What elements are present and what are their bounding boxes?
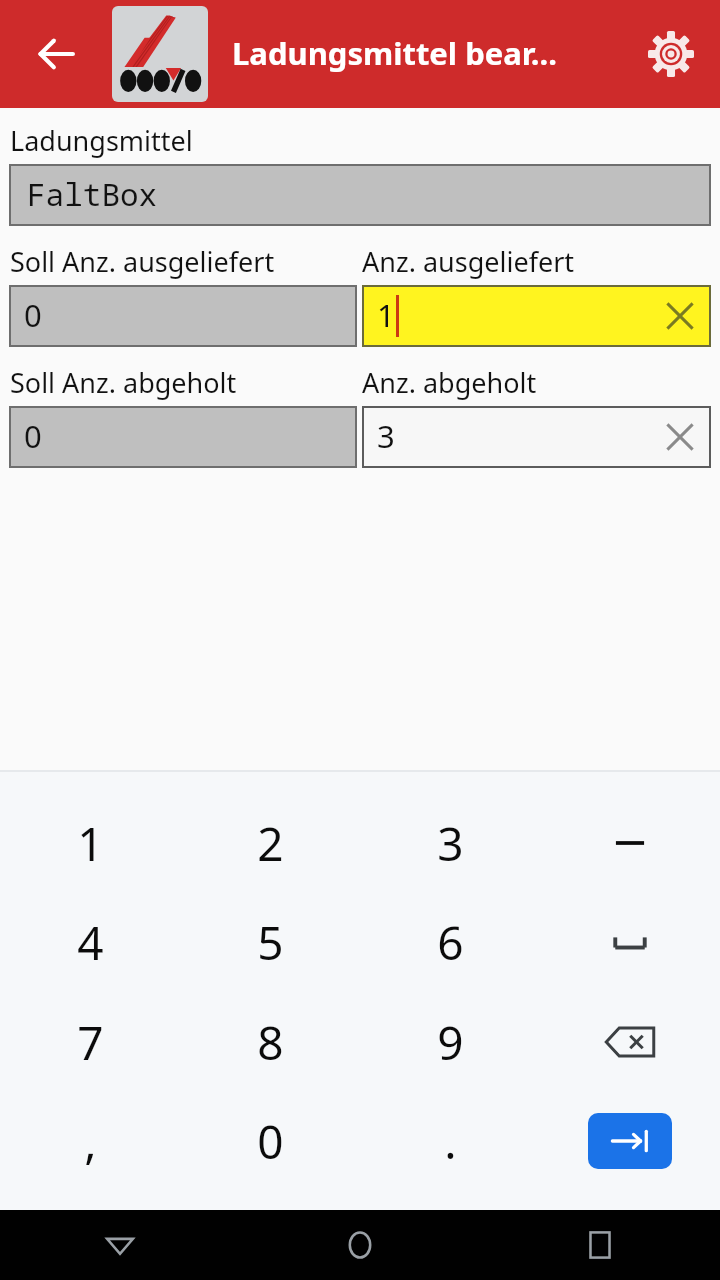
staticText: FaltBox [27,173,158,215]
button[interactable]: 0 [9,285,357,347]
button[interactable]: 6 [360,893,540,991]
staticText: 0 [257,1110,284,1173]
button[interactable]: 7 [0,993,180,1091]
staticText: 7 [77,1011,104,1074]
staticText: 1 [377,294,395,336]
button[interactable]: 9 [360,993,540,1091]
staticText: 0 [24,294,42,336]
button[interactable]: Clear [649,285,711,347]
button[interactable]: , [0,1092,180,1190]
staticText: 9 [437,1011,464,1074]
staticText: Anz. abgeholt [362,364,537,401]
staticText: Ladungsmittel [10,122,193,159]
button[interactable]: Minus [540,794,720,892]
button[interactable]: Space [540,893,720,991]
button[interactable]: 3 [362,406,711,468]
button[interactable]: 4 [0,893,180,991]
button[interactable]: Backspace [540,993,720,1091]
button[interactable]: Hide keyboard [0,1210,240,1280]
staticText: 5 [257,911,284,974]
staticText: 2 [257,812,284,875]
staticText: 8 [257,1011,284,1074]
staticText: . [444,1110,457,1173]
button[interactable]: Next [540,1092,720,1190]
button[interactable]: . [360,1092,540,1190]
staticText: 3 [437,812,464,875]
staticText: Soll Anz. abgeholt [10,364,362,401]
button[interactable]: Clear [649,406,711,468]
button[interactable]: 2 [180,794,360,892]
button[interactable]: 0 [9,406,357,468]
staticText: Soll Anz. ausgeliefert [10,243,362,280]
staticText: , [84,1110,97,1173]
button[interactable]: Recent apps [480,1210,720,1280]
staticText: 3 [377,415,395,457]
staticText: 6 [437,911,464,974]
staticText: 4 [77,911,104,974]
button[interactable]: Back [22,20,90,88]
button[interactable]: FaltBox [9,164,711,226]
button[interactable]: 1 [362,285,711,347]
button[interactable]: 0 [180,1092,360,1190]
staticText: Anz. ausgeliefert [362,243,575,280]
staticText: 0 [24,415,42,457]
button[interactable]: 5 [180,893,360,991]
staticText: 1 [77,812,104,875]
button[interactable]: Settings [636,19,706,89]
button[interactable]: 8 [180,993,360,1091]
button[interactable]: Home [240,1210,480,1280]
button[interactable]: 3 [360,794,540,892]
staticText: Ladungsmittel bear... [232,32,557,74]
button[interactable]: 1 [0,794,180,892]
